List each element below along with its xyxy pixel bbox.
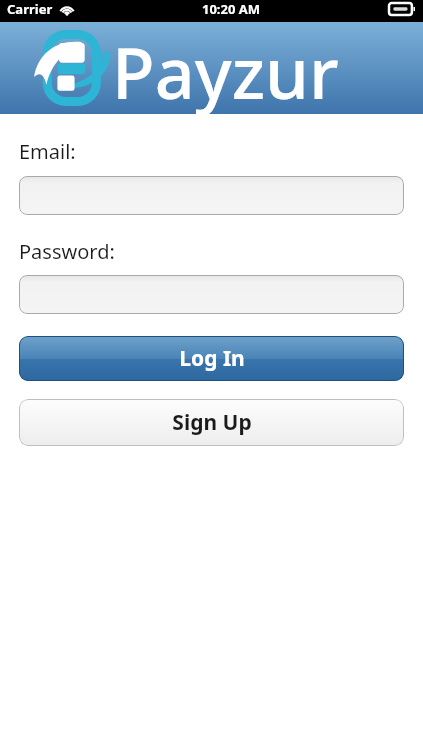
staticText: Payzur: [112, 24, 339, 116]
button[interactable]: [19, 176, 404, 215]
staticText: 10:20 AM: [202, 0, 261, 18]
button[interactable]: Sign Up: [19, 399, 404, 446]
button[interactable]: [19, 275, 404, 314]
staticText: Carrier: [7, 0, 53, 18]
staticText: Email:: [19, 138, 76, 165]
staticText: Log In: [179, 344, 245, 373]
staticText: Password:: [19, 238, 115, 265]
staticText: Sign Up: [172, 408, 252, 437]
button[interactable]: Log In: [19, 336, 404, 381]
